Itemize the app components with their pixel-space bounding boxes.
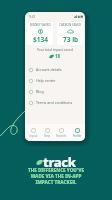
staticText: Terms and conditions bbox=[36, 100, 73, 105]
staticText: Rewards bbox=[56, 134, 67, 138]
staticText: 18 bbox=[55, 53, 61, 59]
staticText: 73 lb bbox=[63, 35, 79, 44]
button[interactable]: Help center bbox=[25, 75, 85, 86]
staticText: Impact bbox=[29, 134, 38, 138]
button[interactable]: Account details bbox=[25, 64, 85, 75]
staticText: Your total impact saved bbox=[37, 48, 73, 52]
staticText: MONEY SAVED bbox=[30, 23, 51, 27]
button[interactable]: Shop bbox=[43, 128, 52, 138]
staticText: Help center bbox=[36, 78, 56, 83]
staticText: Blog bbox=[36, 89, 44, 94]
button[interactable]: Impact bbox=[28, 128, 39, 138]
button[interactable]: CARBON SAVED bbox=[57, 22, 83, 45]
staticText: THE DIFFERENCE YOU'VE MADE VIA THE IN-AP… bbox=[28, 167, 84, 185]
staticText: Profile bbox=[73, 134, 81, 138]
staticText: Shop bbox=[44, 134, 51, 138]
button[interactable]: Profile bbox=[72, 128, 82, 138]
button[interactable]: MONEY SAVED bbox=[27, 22, 53, 45]
button[interactable]: Rewards bbox=[55, 128, 68, 138]
staticText: CARBON SAVED bbox=[59, 23, 82, 27]
staticText: 9:41 bbox=[29, 15, 36, 19]
staticText: Account details bbox=[36, 67, 62, 72]
staticText: track bbox=[43, 153, 76, 171]
button[interactable]: Blog bbox=[25, 86, 85, 97]
button[interactable]: Terms and conditions bbox=[25, 97, 85, 108]
staticText: $134 bbox=[33, 35, 48, 44]
